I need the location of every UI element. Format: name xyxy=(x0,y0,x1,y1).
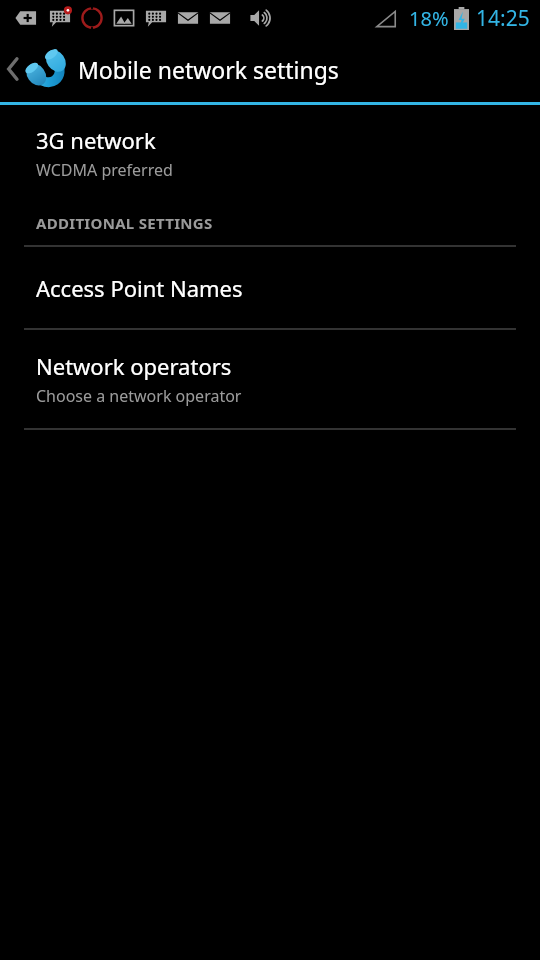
staticText: Mobile network settings xyxy=(78,54,339,85)
staticText: 14:25 xyxy=(476,4,530,33)
button[interactable]: Navigate up xyxy=(0,36,540,102)
button[interactable]: 3G network xyxy=(0,119,540,187)
staticText: WCDMA preferred xyxy=(36,159,173,181)
staticText: 3G network xyxy=(36,125,156,155)
staticText: ADDITIONAL SETTINGS xyxy=(36,213,213,233)
button[interactable]: Network operators xyxy=(0,330,540,428)
staticText: Choose a network operator xyxy=(36,385,242,407)
staticText: Access Point Names xyxy=(36,273,243,303)
staticText: Network operators xyxy=(36,351,232,381)
button[interactable]: Access Point Names xyxy=(0,247,540,328)
staticText: 18% xyxy=(409,5,449,32)
